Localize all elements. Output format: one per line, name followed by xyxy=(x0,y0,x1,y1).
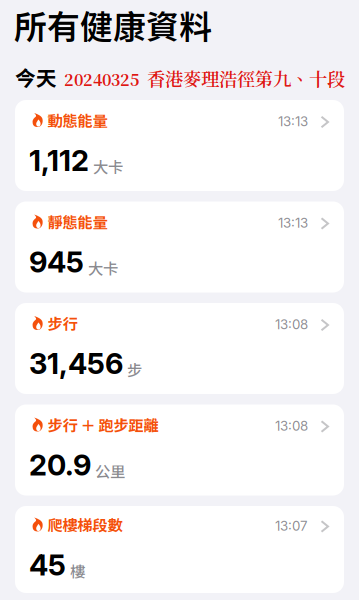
staticText: 20240325 xyxy=(64,68,140,91)
staticText: 20.9 xyxy=(29,447,91,483)
staticText: 45 xyxy=(29,547,66,583)
staticText: 1,112 xyxy=(29,143,89,178)
staticText: 所有健康資料 xyxy=(14,1,212,48)
staticText: 今天 xyxy=(15,62,57,92)
button[interactable]: 步行 ＋ 跑步距離 xyxy=(15,404,344,495)
staticText: 31,456 xyxy=(29,346,123,381)
staticText: 步 xyxy=(127,358,142,380)
staticText: 樓 xyxy=(70,560,85,582)
staticText: 945 xyxy=(29,244,84,280)
staticText: 靜態能量 xyxy=(47,210,107,232)
button[interactable]: 靜態能量 xyxy=(15,201,344,292)
staticText: 香港麥理浩徑第九、十段 xyxy=(147,65,345,91)
staticText: 動態能量 xyxy=(47,109,107,131)
staticText: 大卡 xyxy=(93,155,123,177)
staticText: 13:07 xyxy=(275,518,308,534)
button[interactable]: 爬樓梯段數 xyxy=(15,506,344,593)
button[interactable]: 步行 xyxy=(15,303,344,394)
staticText: 大卡 xyxy=(88,257,118,279)
staticText: 13:13 xyxy=(278,113,308,129)
staticText: 13:08 xyxy=(275,316,308,332)
staticText: 13:08 xyxy=(275,418,308,434)
staticText: 爬樓梯段數 xyxy=(47,513,122,535)
staticText: 公里 xyxy=(95,460,125,482)
staticText: 步行 ＋ 跑步距離 xyxy=(47,413,158,435)
staticText: 13:13 xyxy=(278,215,308,231)
button[interactable]: 動態能量 xyxy=(15,100,344,191)
staticText: 步行 xyxy=(47,312,77,334)
